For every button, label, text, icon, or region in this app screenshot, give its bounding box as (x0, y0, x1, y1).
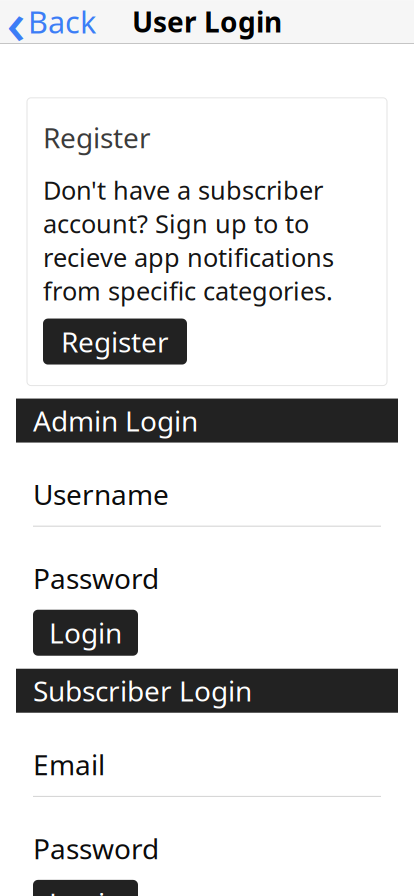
staticText: Admin Login (33, 402, 198, 439)
staticText: Password (33, 830, 159, 867)
staticText: Register (43, 119, 151, 156)
button[interactable]: Login (33, 610, 138, 656)
staticText: Password (33, 559, 159, 597)
button[interactable]: ‹ (2, 0, 102, 43)
staticText: Subscriber Login (33, 672, 252, 709)
staticText: User Login (132, 3, 282, 40)
staticText: Email (33, 746, 105, 783)
staticText: Login (49, 614, 122, 651)
button[interactable]: Login (33, 880, 138, 896)
staticText: Don't have a subscriber account? Sign up… (43, 173, 334, 308)
staticText: Username (33, 476, 169, 513)
staticText: Back (28, 1, 96, 42)
staticText: Login (49, 884, 122, 896)
button[interactable]: Register (43, 319, 187, 365)
staticText: Register (61, 323, 169, 360)
staticText: ‹ (6, 0, 25, 61)
